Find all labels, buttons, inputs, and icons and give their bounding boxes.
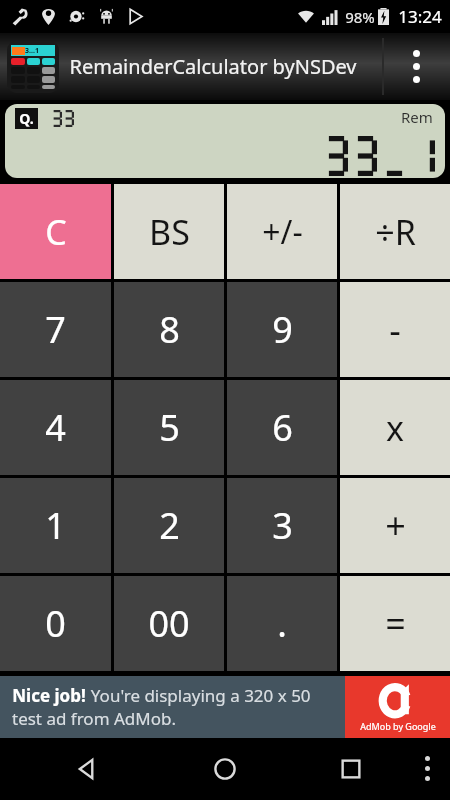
button[interactable]: Menu (405, 738, 450, 800)
staticText: 3 (272, 501, 293, 550)
button[interactable]: More options (391, 38, 442, 95)
staticText: 3…1 (25, 46, 39, 56)
staticText: 2 (159, 501, 180, 550)
staticText: C (45, 209, 67, 255)
button[interactable]: Recent apps (340, 738, 362, 800)
button[interactable]: +/- (227, 184, 337, 279)
button[interactable]: . (227, 576, 337, 671)
button[interactable]: ÷R (340, 184, 450, 279)
staticText: = (385, 599, 406, 648)
button[interactable]: 1 (0, 478, 111, 573)
button[interactable]: = (340, 576, 450, 671)
staticText: BS (149, 209, 190, 255)
staticText: 13:24 (398, 5, 442, 28)
button[interactable]: 6 (227, 380, 337, 475)
staticText: 0 (45, 599, 66, 648)
button[interactable]: BS (114, 184, 224, 279)
staticText: - (389, 305, 401, 354)
staticText: Nice job! (12, 684, 86, 707)
button[interactable]: - (340, 282, 450, 377)
staticText: +/- (262, 210, 303, 254)
staticText: 4 (45, 403, 66, 452)
button[interactable]: + (340, 478, 450, 573)
button[interactable]: 0 (0, 576, 111, 671)
button[interactable]: 2 (114, 478, 224, 573)
staticText: 8 (159, 305, 180, 354)
button[interactable]: x (340, 380, 450, 475)
button[interactable]: 00 (114, 576, 224, 671)
staticText: You're displaying a 320 x 50 (86, 684, 311, 707)
button[interactable]: 5 (114, 380, 224, 475)
button[interactable]: Home (191, 738, 259, 800)
staticText: 9 (272, 305, 293, 354)
staticText: 00 (148, 599, 190, 648)
staticText: 5 (159, 403, 180, 452)
staticText: Q. (19, 109, 34, 128)
staticText: 7 (45, 305, 66, 354)
button[interactable]: 9 (227, 282, 337, 377)
button[interactable]: 7 (0, 282, 111, 377)
button[interactable]: 4 (0, 380, 111, 475)
staticText: RemainderCalculator byNSDev (69, 53, 357, 80)
staticText: 1 (45, 501, 66, 550)
button[interactable]: Nice job! (0, 676, 450, 738)
staticText: ÷R (375, 209, 416, 255)
staticText: Rem (401, 107, 433, 127)
button[interactable]: Back (75, 738, 99, 800)
staticText: AdMob by Google (360, 720, 436, 732)
staticText: . (277, 599, 287, 648)
button[interactable]: 8 (114, 282, 224, 377)
button[interactable]: 3 (227, 478, 337, 573)
staticText: 6 (272, 403, 293, 452)
staticText: + (385, 501, 406, 550)
staticText: test ad from AdMob. (12, 707, 176, 730)
button[interactable]: C (0, 184, 111, 279)
staticText: x (386, 405, 404, 451)
staticText: 98% (345, 7, 375, 27)
